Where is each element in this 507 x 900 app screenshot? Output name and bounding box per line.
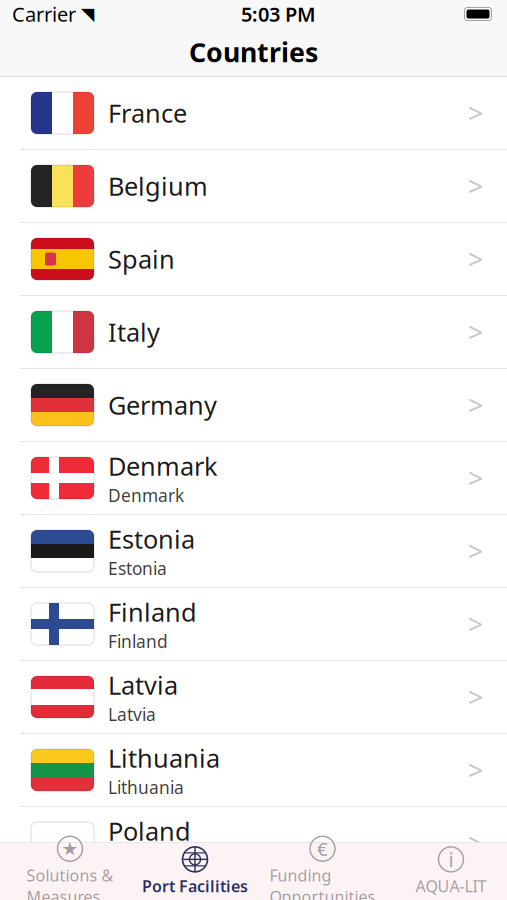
staticText: Lithuania [108, 776, 184, 799]
staticText: > [468, 460, 483, 496]
staticText: > [468, 825, 483, 861]
staticText: AQUA-LIT [415, 875, 486, 897]
staticText: > [468, 95, 483, 131]
button[interactable]: i [395, 842, 507, 900]
staticText: > [468, 606, 483, 642]
staticText: Finland [108, 630, 168, 653]
button[interactable]: Belgium [0, 150, 507, 223]
staticText: Carrier [12, 1, 76, 27]
staticText: Solutions & Measures [26, 865, 113, 900]
button[interactable]: € [250, 842, 395, 900]
button[interactable]: Poland [0, 807, 507, 880]
staticText: Poland [108, 849, 164, 872]
staticText: Funding Opportunities [269, 865, 375, 900]
staticText: Finland [108, 595, 197, 629]
staticText: > [468, 241, 483, 277]
button[interactable]: France [0, 77, 507, 150]
staticText: > [468, 168, 483, 204]
button[interactable]: Germany [0, 369, 507, 442]
staticText: > [468, 752, 483, 788]
staticText: Denmark [108, 449, 218, 483]
staticText: Italy [108, 315, 160, 349]
staticText: Spain [108, 242, 175, 276]
staticText: € [317, 836, 328, 861]
button[interactable]: Italy [0, 296, 507, 369]
staticText: France [108, 96, 187, 130]
button[interactable]: Denmark [0, 442, 507, 515]
button[interactable]: Latvia [0, 661, 507, 734]
staticText: Denmark [108, 484, 184, 507]
staticText: ★ [61, 838, 78, 859]
staticText: Poland [108, 814, 191, 848]
button[interactable]: Lithuania [0, 734, 507, 807]
staticText: Germany [108, 388, 217, 422]
staticText: > [468, 314, 483, 350]
button[interactable]: ★ [0, 842, 140, 900]
staticText: Latvia [108, 668, 178, 702]
staticText: ◥ [81, 4, 94, 24]
staticText: 5:03 PM [241, 1, 316, 27]
button[interactable]: Finland [0, 588, 507, 661]
staticText: Latvia [108, 703, 156, 726]
button[interactable]: Estonia [0, 515, 507, 588]
staticText: Lithuania [108, 741, 220, 775]
staticText: Belgium [108, 169, 208, 203]
staticText: i [448, 846, 453, 873]
button[interactable]: Port Facilities [140, 842, 250, 900]
staticText: Port Facilities [142, 875, 248, 897]
staticText: > [468, 387, 483, 423]
staticText: Estonia [108, 522, 195, 556]
staticText: Estonia [108, 557, 167, 580]
staticText: Countries [189, 34, 318, 70]
staticText: > [468, 679, 483, 715]
button[interactable]: Spain [0, 223, 507, 296]
staticText: > [468, 533, 483, 569]
